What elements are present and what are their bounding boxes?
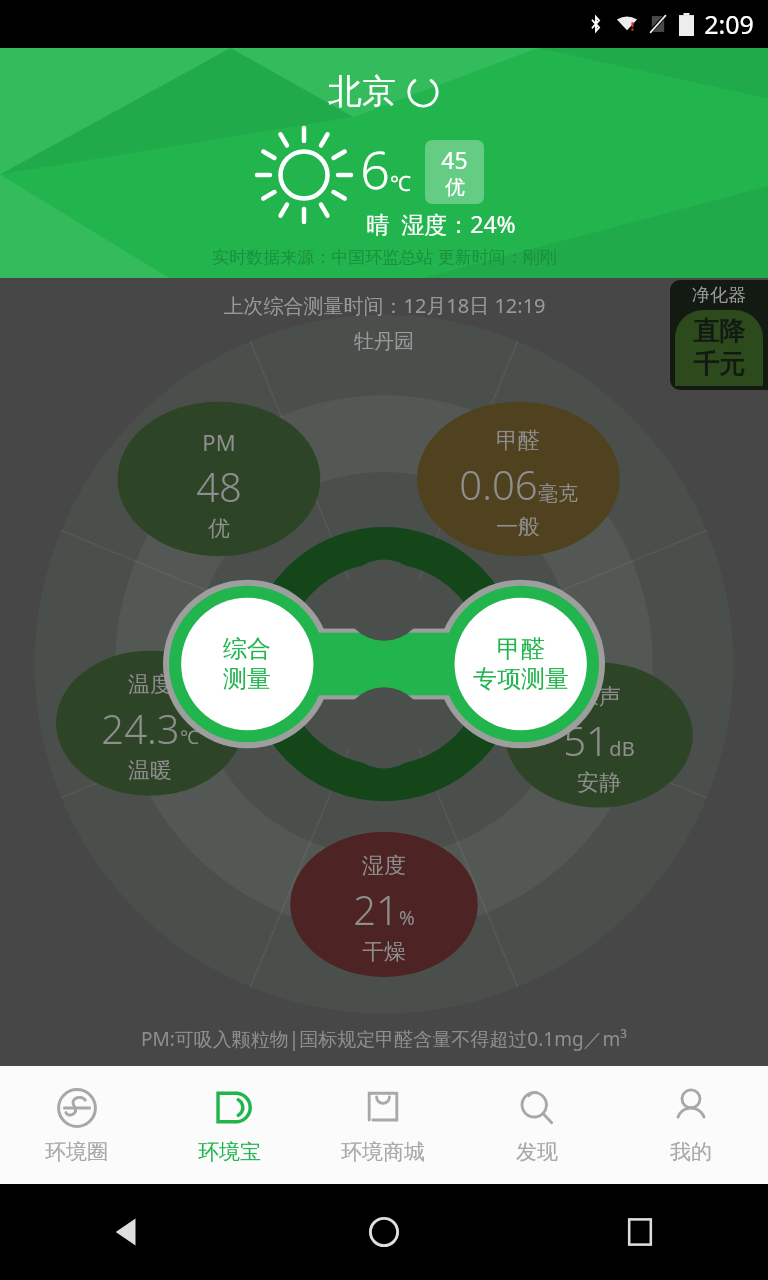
staticText: 测量 bbox=[223, 664, 271, 694]
button[interactable]: 甲醛 bbox=[384, 574, 768, 754]
staticText: 晴 湿度：24% bbox=[366, 208, 516, 239]
staticText: 综合 bbox=[223, 634, 271, 664]
staticText: 噪声 bbox=[577, 683, 621, 711]
button[interactable]: 环境宝 bbox=[153, 1066, 306, 1184]
button[interactable]: 综合 bbox=[0, 574, 384, 754]
staticText: 实时数据来源：中国环监总站 更新时间：刚刚 bbox=[212, 245, 557, 268]
staticText: 45 bbox=[441, 144, 468, 175]
staticText: 毫克 bbox=[538, 481, 578, 506]
staticText: 优 bbox=[445, 175, 465, 200]
button[interactable]: 45 bbox=[425, 140, 484, 204]
staticText: 51 bbox=[563, 713, 609, 767]
staticText: 环境商城 bbox=[341, 1139, 425, 1165]
staticText: 温度 bbox=[128, 671, 172, 699]
button[interactable]: 环境圈 bbox=[0, 1066, 153, 1184]
staticText: 我的 bbox=[670, 1139, 712, 1165]
staticText: 湿度 bbox=[362, 852, 406, 880]
staticText: 北京 bbox=[328, 70, 396, 113]
staticText: ℃ bbox=[180, 724, 199, 750]
staticText: 环境圈 bbox=[45, 1139, 108, 1165]
button[interactable]: Home bbox=[367, 1215, 401, 1249]
staticText: 安静 bbox=[577, 769, 621, 797]
staticText: ℃ bbox=[390, 169, 411, 198]
button[interactable]: 净化器 bbox=[670, 280, 768, 390]
staticText: 直降 bbox=[693, 315, 745, 348]
button[interactable]: Recents bbox=[625, 1217, 655, 1247]
button[interactable]: Back bbox=[111, 1215, 145, 1249]
staticText: 净化器 bbox=[692, 284, 746, 307]
staticText: 发现 bbox=[516, 1139, 558, 1165]
staticText: 千元 bbox=[693, 348, 745, 381]
staticText: % bbox=[399, 905, 415, 931]
button[interactable]: 北京 bbox=[320, 68, 448, 115]
button[interactable]: 发现 bbox=[460, 1066, 614, 1184]
button[interactable]: 环境商城 bbox=[306, 1066, 460, 1184]
staticText: dB bbox=[609, 735, 635, 762]
staticText: 环境宝 bbox=[198, 1139, 261, 1165]
staticText: 甲醛 bbox=[497, 634, 545, 664]
staticText: 一般 bbox=[496, 513, 540, 541]
staticText: 6 bbox=[360, 133, 390, 204]
staticText: 48 bbox=[196, 459, 242, 513]
staticText: 2:09 bbox=[704, 7, 754, 41]
staticText: 温暖 bbox=[128, 757, 172, 785]
button[interactable]: 湿度 bbox=[294, 852, 474, 966]
staticText: 24.3 bbox=[101, 701, 180, 755]
button[interactable]: 我的 bbox=[614, 1066, 768, 1184]
button[interactable]: 噪声 bbox=[509, 683, 689, 797]
button[interactable]: 甲醛 bbox=[428, 427, 608, 541]
staticText: PM:可吸入颗粒物|国标规定甲醛含量不得超过0.1mg／m³ bbox=[141, 1026, 627, 1052]
other: Refresh bbox=[406, 75, 440, 109]
staticText: PM bbox=[202, 427, 236, 457]
staticText: 甲醛 bbox=[496, 427, 540, 455]
staticText: 牡丹园 bbox=[354, 329, 414, 354]
staticText: 0.06 bbox=[459, 457, 538, 511]
button[interactable]: 温度 bbox=[60, 671, 240, 785]
staticText: 上次综合测量时间：12月18日 12:19 bbox=[223, 292, 546, 319]
staticText: 21 bbox=[353, 882, 399, 936]
staticText: 专项测量 bbox=[473, 664, 569, 694]
button[interactable]: PM bbox=[129, 427, 309, 543]
staticText: 干燥 bbox=[362, 938, 406, 966]
staticText: 优 bbox=[208, 515, 230, 543]
